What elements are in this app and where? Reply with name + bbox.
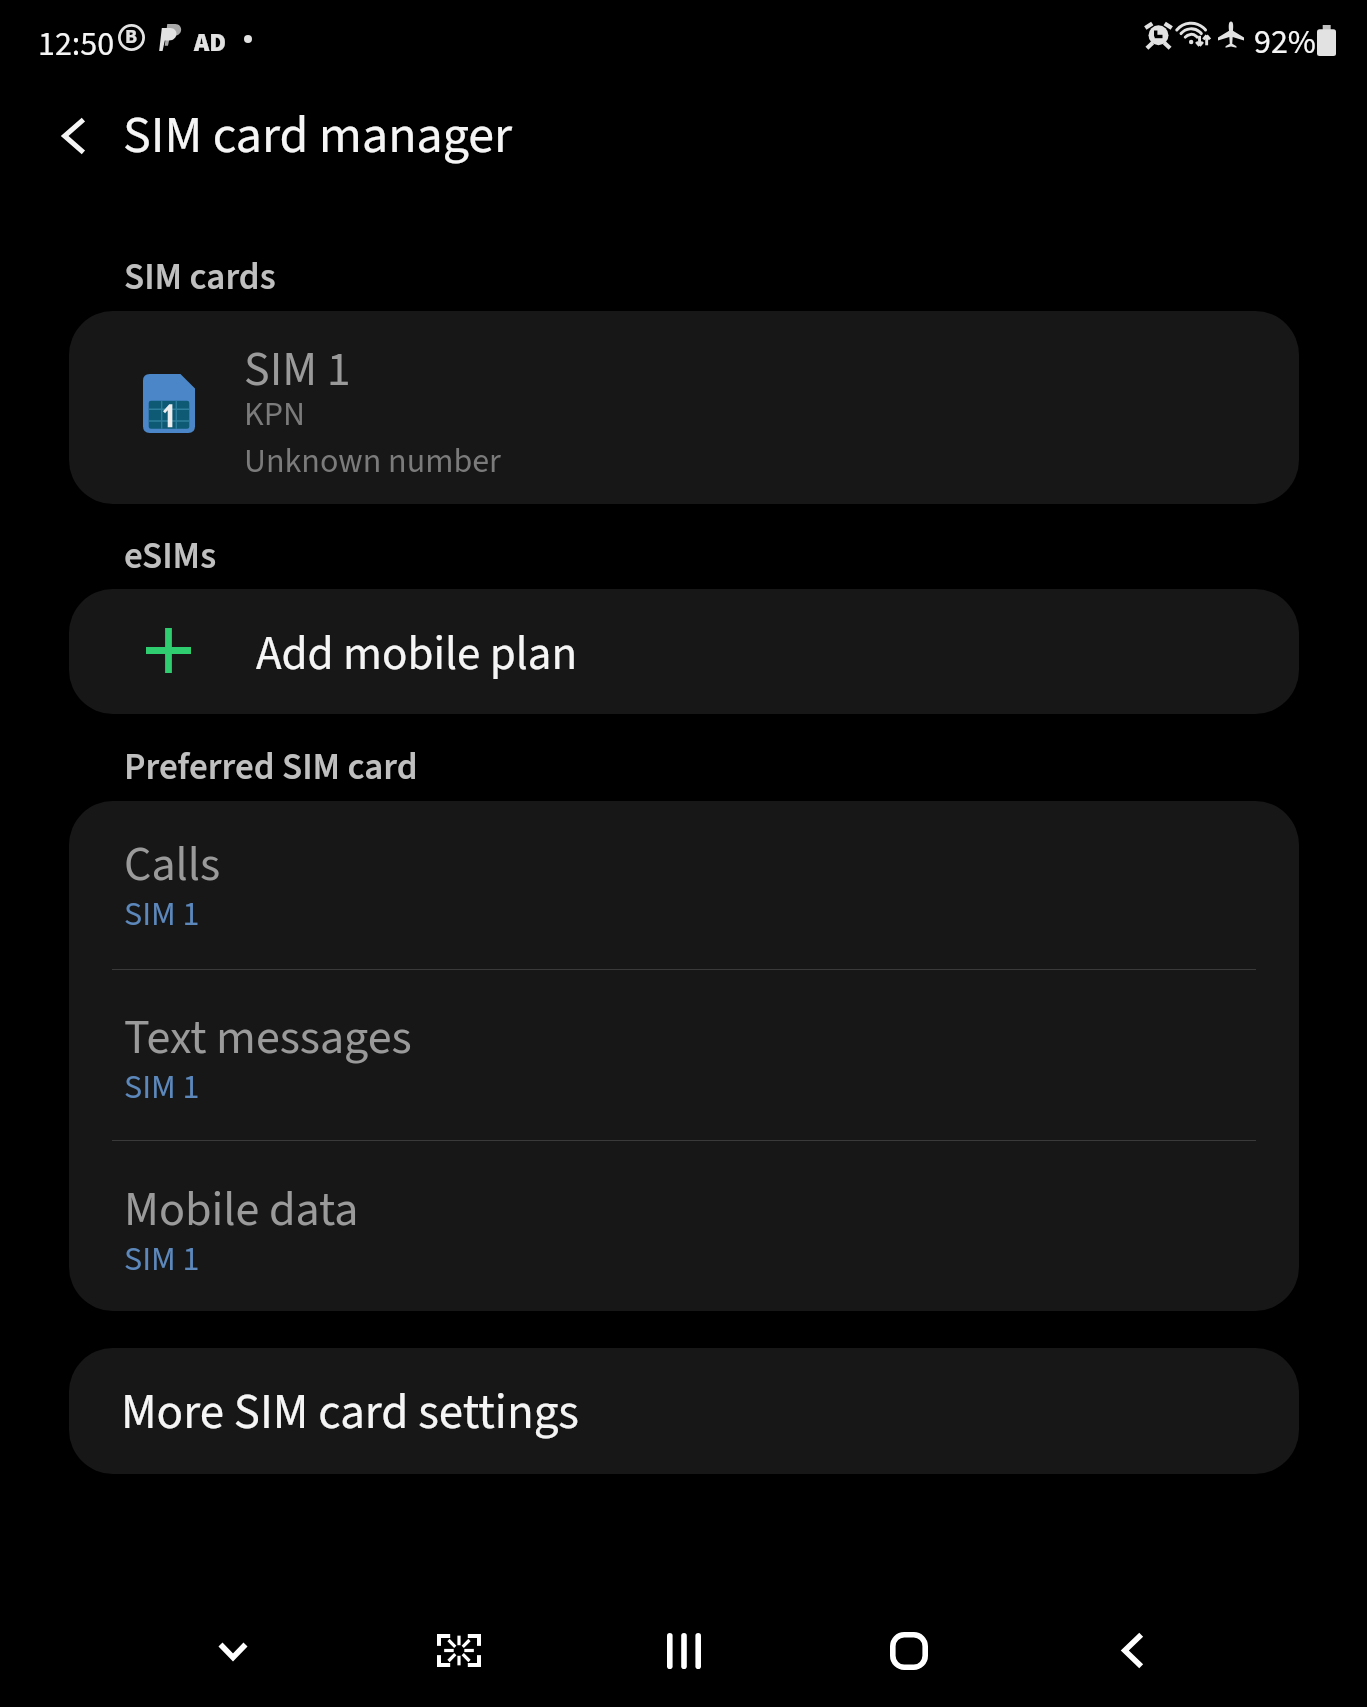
button[interactable]: More SIM card settings: [69, 1348, 1299, 1474]
button[interactable]: Mobile data: [69, 1141, 1299, 1311]
staticText: Calls: [124, 831, 221, 899]
staticText: 12:50: [38, 20, 115, 68]
staticText: SIM 1: [124, 1235, 200, 1283]
button[interactable]: Screenshot: [405, 1597, 513, 1704]
button[interactable]: Text messages: [69, 970, 1299, 1140]
button[interactable]: Recents: [630, 1597, 738, 1704]
staticText: B: [125, 23, 138, 50]
staticText: Add mobile plan: [256, 621, 578, 688]
button[interactable]: SIM 1: [69, 311, 1299, 504]
staticText: Unknown number: [244, 437, 501, 485]
staticText: SIM 1: [124, 890, 200, 938]
button[interactable]: Hide keyboard: [179, 1597, 287, 1704]
staticText: SIM card manager: [123, 99, 513, 173]
staticText: More SIM card settings: [121, 1378, 579, 1448]
staticText: eSIMs: [124, 530, 217, 583]
staticText: 92%: [1254, 18, 1316, 66]
button[interactable]: Add mobile plan: [69, 589, 1299, 714]
button[interactable]: Back: [1079, 1597, 1187, 1704]
button[interactable]: Home: [855, 1597, 963, 1704]
staticText: Preferred SIM card: [124, 741, 418, 794]
staticText: SIM cards: [124, 251, 276, 304]
staticText: KPN: [244, 390, 305, 438]
staticText: AD: [194, 24, 226, 61]
button[interactable]: Calls: [69, 801, 1299, 969]
staticText: Mobile data: [124, 1176, 359, 1244]
staticText: SIM 1: [244, 336, 351, 404]
button[interactable]: Back: [37, 99, 111, 173]
staticText: SIM 1: [124, 1063, 200, 1111]
staticText: Text messages: [124, 1004, 412, 1072]
